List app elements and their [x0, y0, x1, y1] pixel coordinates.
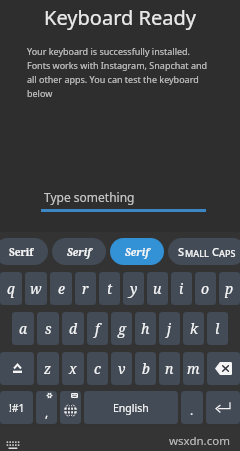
staticText: !#1 — [9, 401, 25, 415]
staticText: a — [19, 319, 28, 338]
staticText: n — [165, 359, 174, 378]
staticText: t — [107, 279, 113, 298]
staticText: b — [142, 359, 150, 378]
button[interactable]: Shift — [0, 352, 34, 385]
button[interactable]: Enter — [206, 391, 240, 424]
staticText: k — [190, 319, 198, 338]
button[interactable]: Serif — [52, 238, 106, 265]
button[interactable]: e — [50, 272, 72, 305]
staticText: e — [58, 279, 65, 298]
staticText: c — [94, 359, 101, 378]
staticText: Keyboard Ready — [0, 4, 240, 31]
staticText: i — [179, 279, 184, 298]
staticText: p — [225, 279, 234, 298]
staticText: Type something — [44, 189, 135, 205]
staticText: x — [69, 359, 77, 378]
staticText: MALL — [185, 247, 212, 259]
staticText: u — [153, 279, 162, 298]
button[interactable]: S — [168, 238, 240, 265]
staticText: Serif — [125, 245, 150, 259]
button[interactable]: l — [207, 312, 228, 345]
staticText: C — [212, 244, 219, 259]
button[interactable]: w — [25, 272, 47, 305]
staticText: l — [215, 319, 220, 338]
button[interactable]: d — [62, 312, 84, 345]
button[interactable]: English — [84, 391, 178, 424]
staticText: wsxdn.com — [169, 433, 230, 449]
button[interactable]: g — [111, 312, 132, 345]
button[interactable]: v — [111, 352, 132, 385]
staticText: . — [190, 402, 194, 418]
button[interactable]: Serif — [110, 238, 164, 265]
staticText: j — [167, 319, 172, 338]
staticText: w — [30, 279, 42, 298]
staticText: d — [69, 319, 78, 338]
staticText: z — [44, 359, 52, 378]
staticText: Your keyboard is successfully installed.… — [27, 45, 211, 100]
button[interactable]: . — [181, 391, 203, 424]
button[interactable]: u — [147, 272, 168, 305]
button[interactable]: n — [159, 352, 180, 385]
button[interactable]: t — [99, 272, 120, 305]
staticText: f — [95, 319, 100, 338]
button[interactable]: p — [219, 272, 240, 305]
button[interactable]: b — [135, 352, 156, 385]
staticText: q — [7, 279, 15, 298]
staticText: s — [45, 319, 52, 338]
button[interactable]: s — [37, 312, 59, 345]
button[interactable]: k — [183, 312, 204, 345]
staticText: r — [82, 279, 89, 298]
staticText: m — [187, 359, 200, 378]
button[interactable]: z — [37, 352, 59, 385]
button[interactable]: Serif — [0, 238, 48, 265]
staticText: S — [178, 244, 185, 259]
button[interactable]: f — [87, 312, 108, 345]
button[interactable]: q — [0, 272, 22, 305]
button[interactable]: , — [36, 391, 57, 424]
button[interactable]: Backspace — [207, 352, 240, 385]
button[interactable]: a — [12, 312, 34, 345]
button[interactable]: i — [171, 272, 192, 305]
button[interactable]: h — [135, 312, 156, 345]
button[interactable]: y — [123, 272, 144, 305]
button[interactable]: Hide keyboard — [6, 441, 20, 450]
button[interactable]: o — [195, 272, 216, 305]
button[interactable]: r — [75, 272, 96, 305]
staticText: Serif — [67, 245, 92, 259]
staticText: Serif — [9, 245, 34, 259]
button[interactable]: j — [159, 312, 180, 345]
staticText: h — [141, 319, 150, 338]
button[interactable]: x — [62, 352, 84, 385]
staticText: English — [113, 401, 149, 415]
staticText: v — [118, 359, 126, 378]
button[interactable]: Change keyboard — [60, 391, 81, 424]
staticText: , — [45, 404, 49, 420]
button[interactable]: !#1 — [0, 391, 33, 424]
button[interactable]: m — [183, 352, 204, 385]
button[interactable]: c — [87, 352, 108, 385]
staticText: g — [118, 319, 126, 338]
staticText: APS — [219, 247, 236, 259]
staticText: o — [201, 279, 210, 298]
staticText: y — [130, 279, 138, 298]
